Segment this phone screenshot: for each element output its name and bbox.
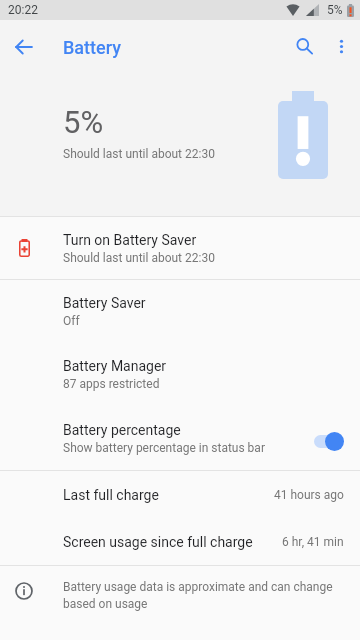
staticText: 20:22 — [8, 3, 38, 17]
staticText: Show battery percentage in status bar — [63, 441, 265, 455]
staticText: 87 apps restricted — [63, 377, 160, 391]
staticText: Turn on Battery Saver — [63, 232, 197, 248]
staticText: Battery — [63, 37, 122, 58]
staticText: Battery usage data is approximate and ca… — [63, 580, 344, 611]
staticText: 5% — [63, 104, 104, 140]
button[interactable]: Screen usage since full charge — [0, 518, 360, 565]
staticText: Should last until about 22:30 — [63, 251, 215, 265]
staticText: 5% — [327, 3, 343, 17]
button[interactable]: More options — [321, 26, 360, 66]
button[interactable]: Battery Saver — [0, 280, 360, 343]
button[interactable]: Battery Manager — [0, 343, 360, 406]
staticText: Battery Saver — [63, 295, 146, 311]
button[interactable]: Last full charge — [0, 471, 360, 518]
staticText: Battery Manager — [63, 358, 167, 374]
staticText: Battery percentage — [63, 422, 181, 438]
staticText: Should last until about 22:30 — [63, 147, 215, 161]
button[interactable]: Search — [284, 26, 324, 66]
button[interactable]: Battery percentage toggle — [313, 431, 344, 451]
button[interactable]: Turn on Battery Saver — [0, 217, 360, 279]
staticText: Screen usage since full charge — [63, 534, 282, 550]
button[interactable]: Back — [4, 27, 44, 67]
staticText: 6 hr, 41 min — [282, 535, 344, 549]
staticText: 41 hours ago — [274, 488, 344, 502]
staticText: Off — [63, 314, 80, 328]
button[interactable]: Battery percentage — [0, 406, 360, 470]
staticText: Last full charge — [63, 487, 274, 503]
